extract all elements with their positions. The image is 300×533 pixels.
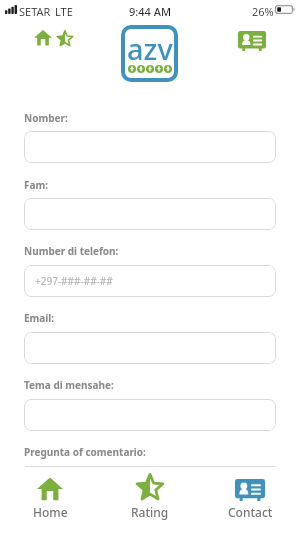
staticText: Pregunta of comentario: — [24, 445, 146, 459]
staticText: Tema di mensahe: — [24, 378, 114, 392]
button[interactable]: +297-###-##-## — [24, 265, 276, 297]
staticText: Home — [33, 504, 68, 520]
button[interactable] — [24, 131, 276, 163]
button[interactable] — [24, 198, 276, 230]
staticText: 26% — [252, 4, 274, 19]
staticText: LTE — [55, 4, 73, 19]
button[interactable]: Contact — [238, 31, 266, 51]
staticText: Nomber: — [24, 111, 68, 125]
button[interactable] — [24, 332, 276, 364]
button[interactable]: Home — [0, 467, 100, 533]
staticText: azv — [127, 29, 173, 68]
staticText: 9:44 AM — [129, 4, 172, 19]
staticText: Rating — [131, 504, 169, 520]
staticText: +297-###-##-## — [35, 274, 113, 288]
staticText: Number di telefon: — [24, 244, 119, 258]
button[interactable]: Rating — [56, 30, 74, 47]
button[interactable] — [24, 399, 276, 431]
button[interactable]: Home — [34, 29, 52, 46]
staticText: SETAR — [19, 4, 51, 19]
button[interactable]: Contact — [200, 467, 300, 533]
staticText: Email: — [24, 311, 55, 325]
staticText: Contact — [228, 504, 273, 520]
button[interactable]: Rating — [100, 467, 200, 533]
staticText: Fam: — [24, 178, 49, 192]
